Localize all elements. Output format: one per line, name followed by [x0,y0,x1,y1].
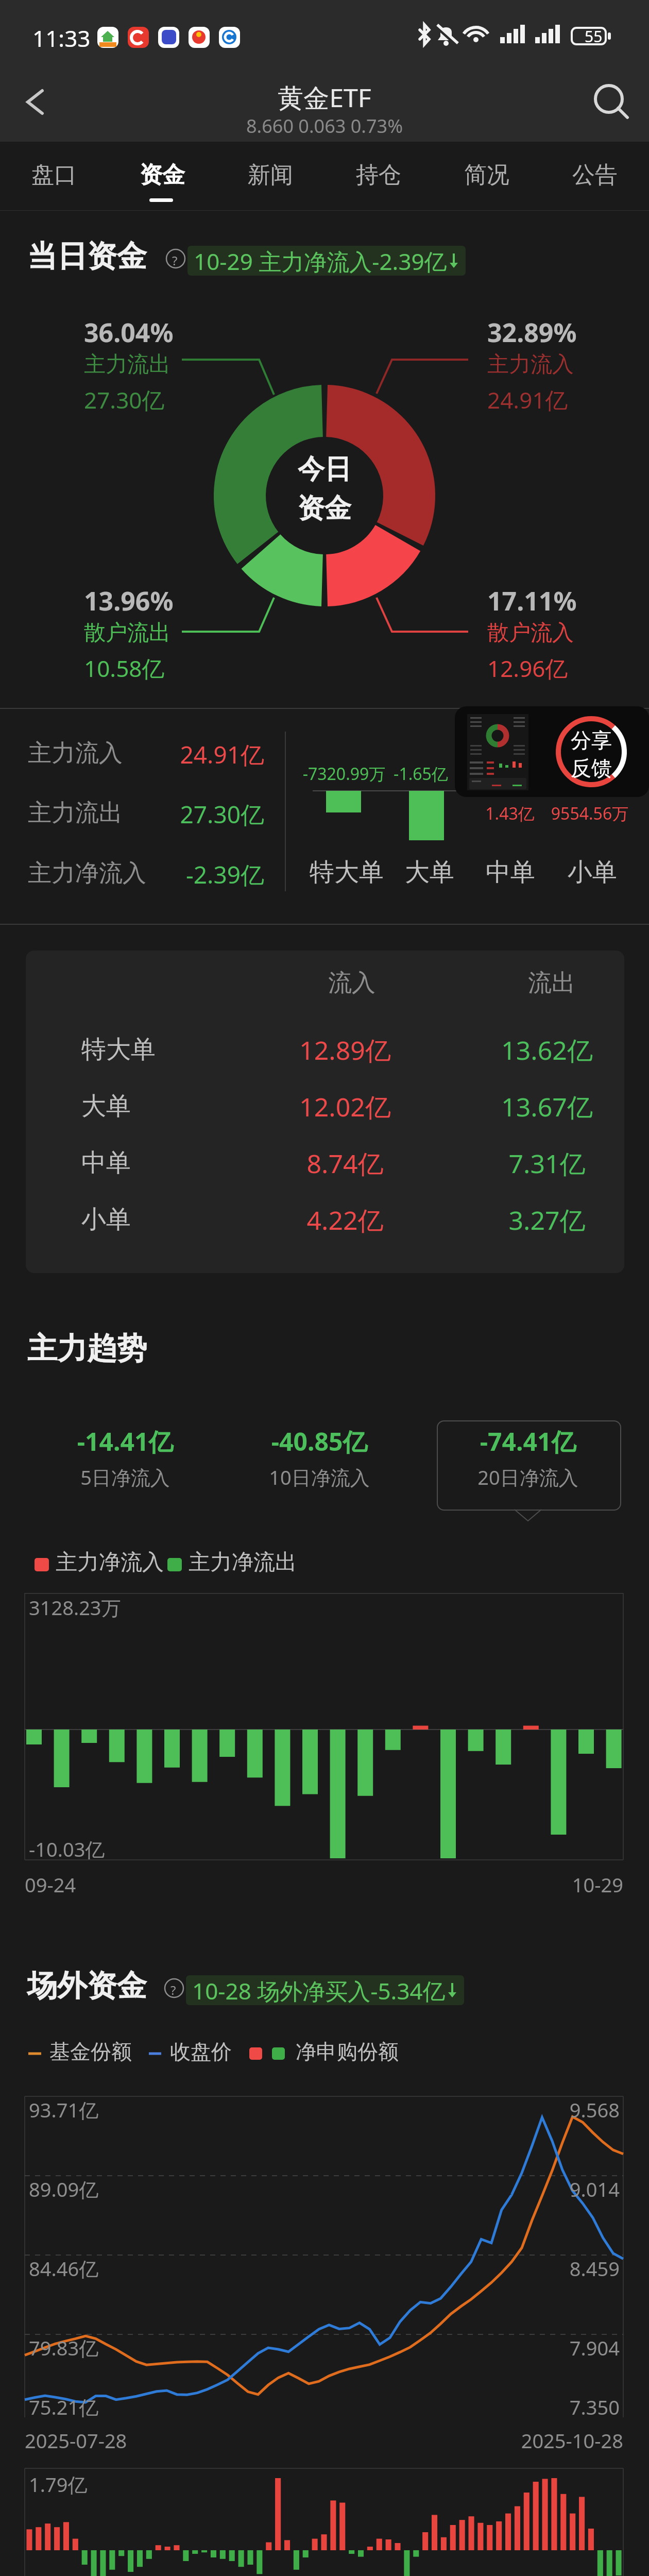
staticText: 资金 [140,161,185,189]
staticText: 13.67亿 [341,1089,649,1124]
staticText: 流出 [346,968,649,998]
button[interactable]: 简况 [435,144,538,209]
staticText: 55 [585,26,649,47]
staticText: 1.43亿 [304,802,649,825]
staticText: 09-24 [25,1871,649,1898]
staticText: 主力净流入 [28,858,649,888]
staticText: 分享 [571,727,612,753]
button[interactable]: 盘口 [3,144,106,209]
staticText: -7320.99万 [138,762,550,785]
staticText: 3128.23万 [29,1594,649,1621]
staticText: -14.41亿 [0,1425,331,1459]
staticText: 主力流出 [28,798,649,828]
staticText: 1.79亿 [29,2471,649,2498]
staticText: 收盘价 [170,2039,649,2064]
staticText: 7.31亿 [341,1146,649,1181]
staticText: -74.41亿 [322,1425,649,1459]
staticText: 11:33 [32,23,649,54]
staticText: 27.30亿 [84,384,649,415]
staticText: 今日 [298,452,351,486]
staticText: 资金 [298,492,351,526]
button[interactable]: 资金 [111,144,214,209]
button[interactable]: Search [587,77,637,127]
staticText: 3.27亿 [341,1202,649,1238]
staticText: 黄金ETF [118,80,531,115]
button[interactable]: 10-29 主力净流入-2.39亿 [187,246,466,276]
staticText: 17.11% [487,583,649,618]
staticText: -10.03亿 [29,1836,649,1862]
staticText: 主力流入 [28,738,649,768]
staticText: 大单 [224,857,636,888]
staticText: 84.46亿 [29,2255,649,2282]
staticText: 主力净流入 [56,1549,649,1576]
staticText: ? [170,1981,176,1998]
staticText: 小单 [81,1204,649,1235]
button[interactable]: Info [165,248,186,269]
staticText: 8.74亿 [139,1146,551,1181]
staticText: 27.30亿 [0,798,264,831]
staticText: 新闻 [248,161,293,189]
button[interactable]: 公告 [543,144,646,209]
staticText: ? [172,252,178,269]
staticText: 12.96亿 [487,653,649,684]
staticText: 公告 [572,161,618,189]
staticText: 主力趋势 [27,1330,649,1367]
staticText: -40.85亿 [113,1425,525,1459]
staticText: 特大单 [141,857,553,888]
staticText: 反馈 [571,755,612,781]
button[interactable] [437,1420,621,1511]
staticText: 89.09亿 [29,2176,649,2202]
staticText: 简况 [464,161,509,189]
staticText: 13.96% [84,583,649,618]
staticText: 24.91亿 [487,384,649,415]
staticText: 场外资金 [27,1967,649,2005]
staticText: 散户流入 [487,619,649,647]
staticText: 中单 [81,1147,649,1178]
staticText: 主力流入 [487,351,649,378]
staticText: 10-29 [211,1871,623,1898]
staticText: 8.459 [208,2255,620,2282]
staticText: 10日净流入 [113,1464,525,1490]
button[interactable]: Back [12,77,62,127]
button[interactable]: 新闻 [219,144,322,209]
staticText: 净申购份额 [296,2039,649,2064]
staticText: 24.91亿 [0,738,264,771]
staticText: -1.65亿 [215,762,627,785]
staticText: 流入 [146,968,558,998]
staticText: 10-29 主力净流入-2.39亿 [194,246,447,276]
staticText: 75.21亿 [29,2394,649,2420]
button[interactable]: Info [164,1978,184,1998]
staticText: 36.04% [84,315,649,350]
staticText: 20日净流入 [322,1464,649,1490]
staticText: 12.02亿 [139,1089,551,1124]
staticText: 特大单 [81,1034,649,1065]
staticText: 10.58亿 [84,653,649,684]
staticText: 2025-07-28 [25,2427,649,2454]
staticText: 79.83亿 [29,2334,649,2361]
staticText: 4.22亿 [139,1202,551,1238]
staticText: 32.89% [487,315,649,350]
staticText: 7.904 [208,2334,620,2361]
staticText: 主力流出 [84,351,649,378]
staticText: 大单 [81,1091,649,1122]
staticText: 散户流出 [84,619,649,647]
staticText: 主力净流出 [189,1549,649,1576]
staticText: 当日资金 [27,238,649,275]
staticText: 7.350 [208,2394,620,2420]
staticText: 93.71亿 [29,2096,649,2123]
staticText: 10-28 场外净买入-5.34亿 [192,1975,446,2005]
staticText: 基金份额 [49,2039,649,2064]
staticText: 13.62亿 [341,1032,649,1067]
staticText: 9554.56万 [384,802,649,825]
staticText: 2025-10-28 [211,2427,623,2454]
staticText: 12.89亿 [139,1032,551,1067]
staticText: 持仓 [356,161,401,189]
button[interactable]: 分享反馈 [455,706,649,797]
staticText: 9.014 [208,2176,620,2202]
staticText: 中单 [304,857,649,888]
staticText: 8.660 0.063 0.73% [118,113,531,139]
staticText: -2.39亿 [0,858,264,891]
button[interactable]: 持仓 [327,144,430,209]
button[interactable]: 10-28 场外净买入-5.34亿 [186,1975,464,2005]
staticText: 9.568 [208,2096,620,2123]
